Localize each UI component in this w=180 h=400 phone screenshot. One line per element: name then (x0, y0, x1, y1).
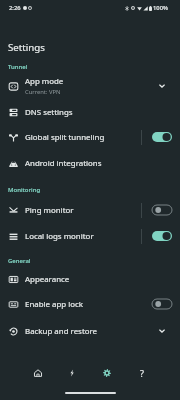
staticText: 2:26 (9, 4, 21, 12)
staticText: Ping monitor (25, 205, 74, 216)
staticText: Backup and restore (25, 326, 98, 337)
button[interactable] (152, 299, 172, 309)
staticText: App mode (25, 76, 64, 87)
staticText: Tunnel (8, 63, 28, 71)
button[interactable]: Help (124, 362, 159, 384)
button[interactable]: Backup and restore (0, 318, 180, 344)
button[interactable] (152, 205, 172, 215)
button[interactable]: App mode (0, 73, 180, 99)
button[interactable]: Ping monitor (0, 197, 180, 223)
staticText: Android integrations (25, 158, 102, 169)
staticText: Monitoring (8, 186, 41, 194)
staticText: Enable app lock (25, 299, 84, 310)
staticText: 100% (153, 4, 168, 12)
staticText: ? (140, 367, 144, 379)
button[interactable]: Appearance (0, 266, 180, 292)
button[interactable]: DNS settings (0, 99, 180, 125)
button[interactable]: Settings (89, 362, 124, 384)
button[interactable]: Enable app lock (0, 291, 180, 317)
staticText: Settings (8, 41, 45, 54)
button[interactable]: Home (21, 362, 55, 384)
staticText: DNS settings (25, 107, 73, 118)
button[interactable] (152, 231, 172, 241)
button[interactable]: Android integrations (0, 150, 180, 176)
button[interactable]: Global split tunneling (0, 124, 180, 150)
staticText: Local logs monitor (25, 231, 94, 242)
staticText: General (8, 257, 31, 265)
button[interactable] (152, 132, 172, 142)
staticText: Global split tunneling (25, 132, 105, 143)
staticText: Appearance (25, 274, 70, 285)
button[interactable]: Local logs monitor (0, 223, 180, 249)
button[interactable]: Speed (55, 362, 89, 384)
staticText: Current: VPN (25, 88, 61, 96)
